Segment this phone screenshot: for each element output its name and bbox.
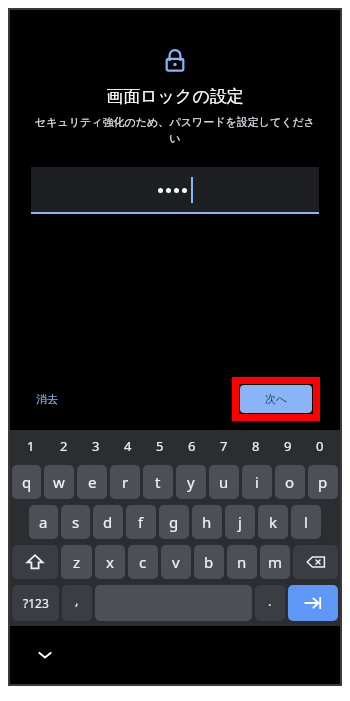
- button[interactable]: Shift: [12, 545, 58, 579]
- button[interactable]: 0: [304, 430, 336, 462]
- button[interactable]: 9: [272, 430, 304, 462]
- staticText: 9: [284, 437, 292, 455]
- staticText: m: [268, 552, 283, 572]
- button[interactable]: v: [161, 545, 191, 579]
- staticText: 8: [252, 437, 260, 455]
- staticText: w: [53, 472, 65, 492]
- button[interactable]: t: [143, 465, 173, 499]
- button[interactable]: m: [260, 545, 290, 579]
- staticText: ,: [75, 591, 79, 609]
- staticText: 4: [124, 437, 132, 455]
- button[interactable]: u: [209, 465, 239, 499]
- button[interactable]: y: [176, 465, 206, 499]
- staticText: k: [269, 512, 278, 532]
- staticText: x: [106, 552, 114, 572]
- button[interactable]: 2: [47, 430, 80, 462]
- button[interactable]: d: [93, 505, 123, 539]
- staticText: s: [72, 512, 80, 532]
- button[interactable]: 8: [240, 430, 272, 462]
- staticText: 5: [156, 437, 164, 455]
- button[interactable]: c: [128, 545, 158, 579]
- button[interactable]: j: [225, 505, 255, 539]
- staticText: 1: [27, 437, 35, 455]
- button[interactable]: n: [227, 545, 257, 579]
- staticText: .: [268, 592, 272, 610]
- staticText: g: [169, 512, 179, 532]
- button[interactable]: ?123: [12, 585, 59, 621]
- button[interactable]: b: [194, 545, 224, 579]
- staticText: 0: [316, 437, 324, 455]
- button[interactable]: w: [44, 465, 74, 499]
- staticText: 6: [188, 437, 196, 455]
- button[interactable]: 3: [80, 430, 112, 462]
- button[interactable]: Backspace: [293, 545, 338, 579]
- button[interactable]: l: [291, 505, 321, 539]
- button[interactable]: 7: [208, 430, 240, 462]
- button[interactable]: 次へ: [240, 385, 312, 413]
- button[interactable]: Hide keyboard: [32, 642, 58, 668]
- staticText: t: [155, 472, 161, 492]
- staticText: 次へ: [265, 392, 288, 406]
- button[interactable]: 1: [14, 430, 47, 462]
- staticText: ?123: [23, 595, 49, 611]
- staticText: 2: [60, 437, 68, 455]
- button[interactable]: f: [126, 505, 156, 539]
- staticText: z: [73, 552, 81, 572]
- button[interactable]: z: [61, 545, 92, 579]
- button[interactable]: [31, 167, 319, 212]
- button[interactable]: g: [159, 505, 189, 539]
- button[interactable]: 5: [144, 430, 176, 462]
- staticText: r: [122, 472, 129, 492]
- button[interactable]: s: [61, 505, 90, 539]
- staticText: c: [139, 552, 147, 572]
- staticText: y: [187, 472, 195, 492]
- staticText: v: [172, 552, 180, 572]
- staticText: o: [285, 472, 295, 492]
- button[interactable]: o: [275, 465, 305, 499]
- button[interactable]: r: [110, 465, 140, 499]
- staticText: f: [138, 512, 144, 532]
- button[interactable]: i: [242, 465, 272, 499]
- button[interactable]: q: [12, 465, 41, 499]
- staticText: 7: [220, 437, 228, 455]
- staticText: n: [237, 552, 247, 572]
- staticText: u: [219, 472, 229, 492]
- staticText: 3: [92, 437, 100, 455]
- staticText: j: [238, 512, 242, 532]
- staticText: p: [318, 472, 328, 492]
- button[interactable]: ,: [62, 585, 92, 621]
- staticText: b: [204, 552, 214, 572]
- other: Lock: [162, 48, 188, 74]
- button[interactable]: p: [308, 465, 338, 499]
- staticText: q: [22, 472, 32, 492]
- staticText: a: [39, 512, 48, 532]
- staticText: 画面ロックの設定: [106, 86, 244, 107]
- button[interactable]: 消去: [30, 386, 64, 412]
- button[interactable]: k: [258, 505, 288, 539]
- button[interactable]: 6: [176, 430, 208, 462]
- staticText: l: [304, 512, 308, 532]
- button[interactable]: h: [192, 505, 222, 539]
- button[interactable]: x: [95, 545, 125, 579]
- button[interactable]: e: [77, 465, 107, 499]
- staticText: e: [88, 472, 97, 492]
- button[interactable]: .: [255, 585, 285, 621]
- staticText: d: [103, 512, 113, 532]
- staticText: i: [255, 472, 259, 492]
- button[interactable]: Next: [288, 585, 338, 621]
- staticText: セキュリティ強化のため、パスワードを設定してください: [32, 115, 318, 145]
- staticText: 消去: [36, 392, 58, 406]
- button[interactable]: a: [29, 505, 58, 539]
- staticText: h: [202, 512, 212, 532]
- button[interactable]: 4: [112, 430, 144, 462]
